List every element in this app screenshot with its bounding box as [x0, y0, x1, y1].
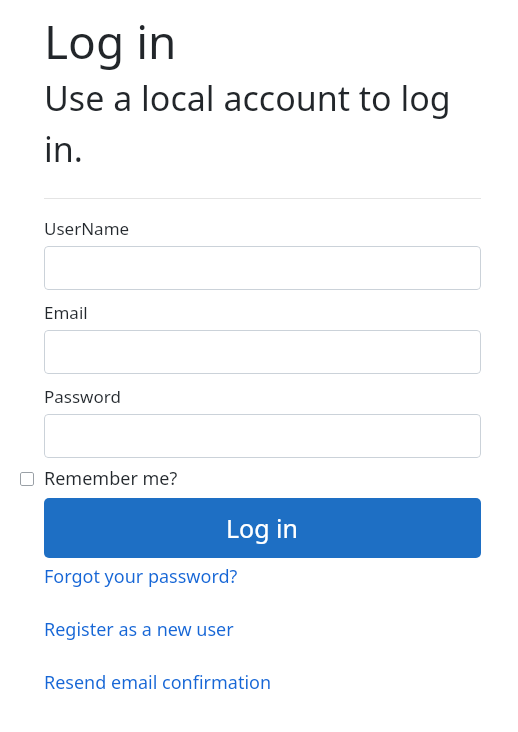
button[interactable]: UserName: [44, 246, 481, 290]
staticText: Log in: [44, 10, 177, 73]
staticText: Resend email confirmation: [44, 670, 272, 695]
button[interactable]: Register as a new user: [44, 617, 481, 642]
button[interactable]: Resend email confirmation: [44, 670, 481, 695]
button[interactable]: Forgot your password?: [44, 564, 481, 589]
staticText: Register as a new user: [44, 617, 234, 642]
staticText: UserName: [44, 217, 130, 240]
staticText: Use a local account to log in.: [44, 75, 481, 172]
button[interactable]: Email: [44, 330, 481, 374]
button[interactable]: Password: [44, 414, 481, 458]
button[interactable]: Log in: [44, 498, 481, 558]
staticText: Email: [44, 301, 88, 324]
button[interactable]: Remember me?: [20, 466, 481, 491]
staticText: Forgot your password?: [44, 564, 238, 589]
staticText: Log in: [226, 511, 299, 545]
staticText: Password: [44, 385, 121, 408]
staticText: Remember me?: [44, 466, 178, 491]
